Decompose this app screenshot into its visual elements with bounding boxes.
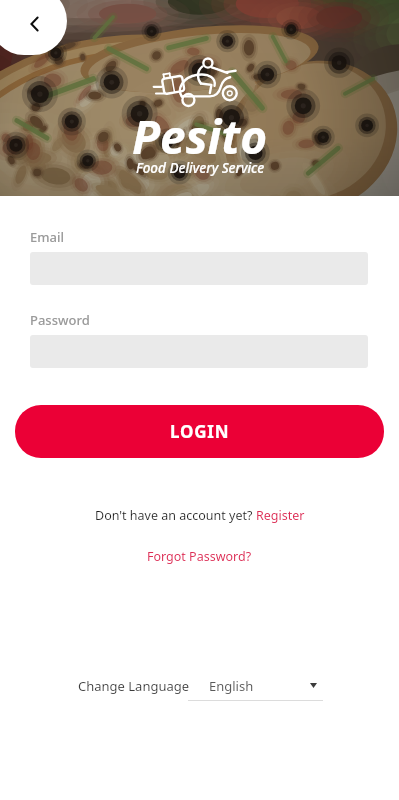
staticText: Food Delivery Service: [136, 159, 265, 177]
staticText: LOGIN: [170, 420, 230, 443]
button[interactable]: English: [188, 674, 323, 701]
button[interactable]: Forgot Password?: [147, 548, 252, 565]
staticText: Change Language: [78, 677, 190, 695]
staticText: Password: [30, 311, 90, 329]
staticText: Don't have an account yet?: [95, 507, 256, 524]
staticText: English: [209, 677, 254, 695]
staticText: Pesito: [132, 105, 268, 168]
button[interactable]: Back: [0, 0, 67, 55]
staticText: Email: [30, 228, 65, 246]
button[interactable]: LOGIN: [15, 405, 384, 458]
button[interactable]: Register: [256, 507, 305, 524]
